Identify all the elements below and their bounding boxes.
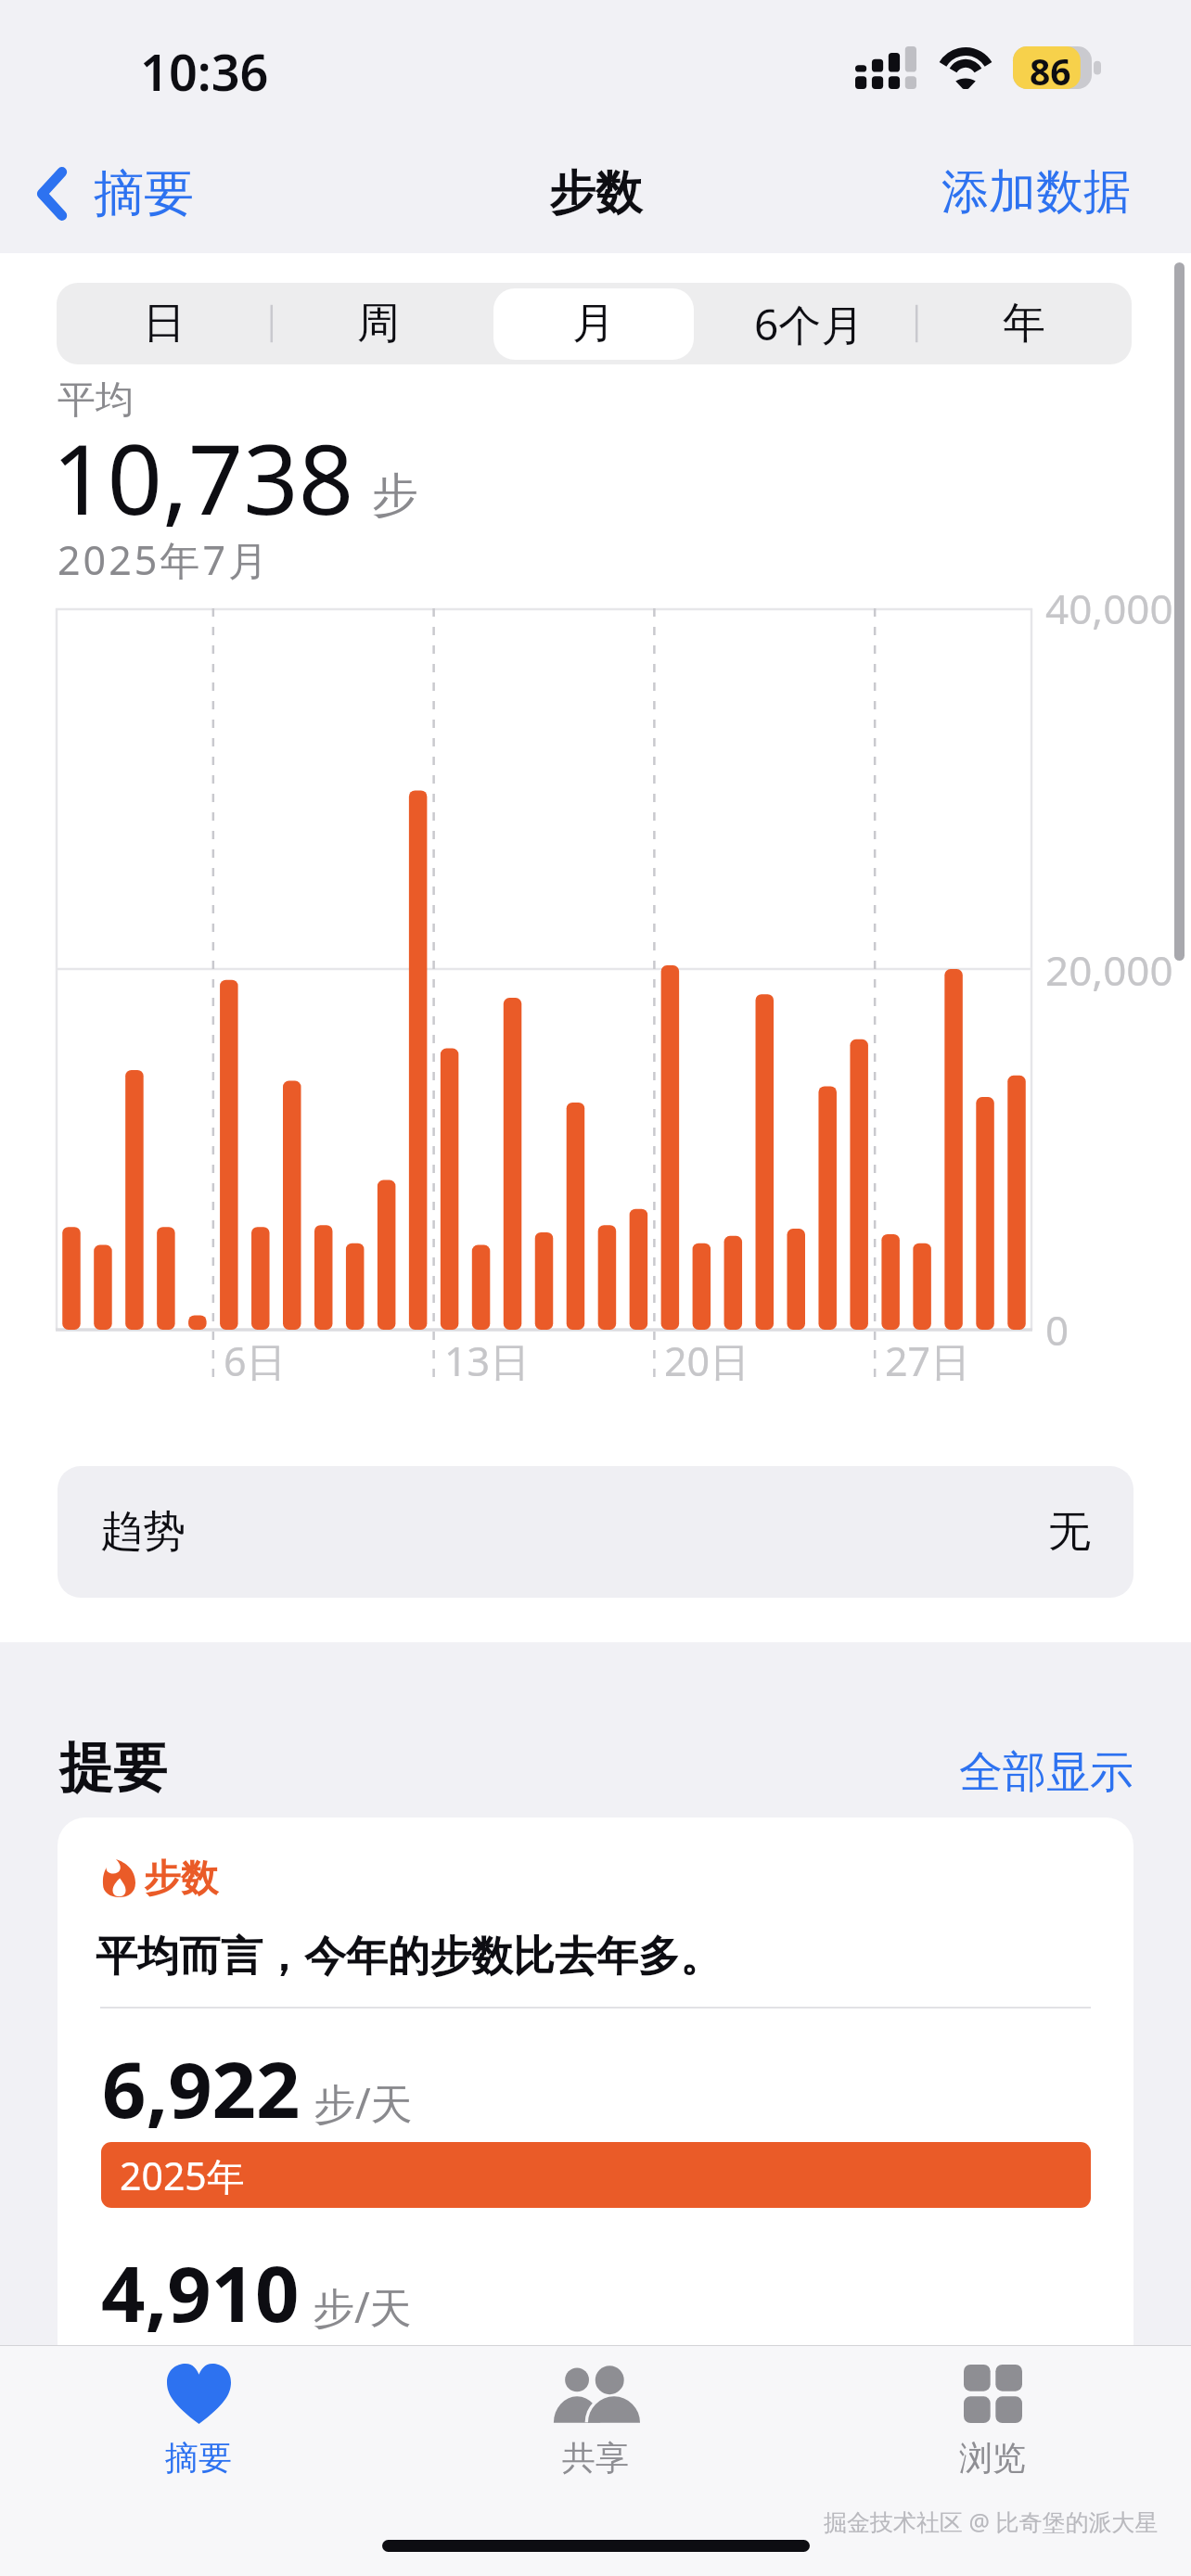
button[interactable]: 全部显示 — [941, 1745, 1191, 1800]
staticText: 年 — [1003, 297, 1045, 351]
other: 摘要 — [167, 2364, 231, 2424]
staticText: 无 — [1048, 1505, 1091, 1559]
staticText: 6个月 — [754, 295, 864, 353]
other: 共享 — [552, 2365, 640, 2423]
button[interactable]: 摘要 — [0, 2346, 397, 2494]
button[interactable]: 日 — [57, 283, 271, 364]
staticText: 27日 — [885, 1333, 971, 1388]
button[interactable]: 共享 — [397, 2346, 794, 2494]
staticText: 添加数据 — [941, 162, 1131, 222]
staticText: 6日 — [224, 1333, 287, 1388]
staticText: 掘金技术社区 @ 比奇堡的派大星 — [824, 2506, 1159, 2537]
staticText: 摘要 — [165, 2437, 232, 2479]
staticText: 步数 — [549, 164, 642, 223]
staticText: 10:36 — [140, 37, 269, 106]
staticText: 步/天 — [314, 2074, 413, 2131]
staticText: 40,000 — [1045, 580, 1173, 636]
button[interactable]: 月 — [486, 283, 701, 364]
other: 浏览 — [964, 2365, 1022, 2423]
staticText: 日 — [143, 297, 186, 351]
button[interactable]: 周 — [271, 283, 486, 364]
button[interactable]: 步数 — [58, 1817, 1133, 2346]
staticText: 86 — [1030, 46, 1071, 89]
button[interactable]: 摘要 — [22, 155, 211, 233]
staticText: 摘要 — [94, 162, 194, 225]
staticText: 2025年7月 — [58, 532, 271, 587]
staticText: 6,922 — [102, 2035, 301, 2140]
staticText: 浏览 — [959, 2437, 1026, 2479]
staticText: 4,910 — [101, 2239, 300, 2344]
staticText: 平均 — [58, 376, 134, 425]
staticText: 20,000 — [1045, 942, 1173, 998]
button[interactable]: 趋势 — [58, 1466, 1133, 1598]
staticText: 步/天 — [313, 2278, 412, 2335]
button[interactable]: 6个月 — [701, 283, 916, 364]
staticText: 步数 — [144, 1855, 218, 1901]
staticText: 平均而言，今年的步数比去年多。 — [96, 1931, 722, 1983]
staticText: 提要 — [59, 1734, 167, 1802]
staticText: 周 — [357, 297, 400, 351]
staticText: 2025年 — [120, 2149, 245, 2201]
staticText: 0 — [1045, 1302, 1069, 1358]
button[interactable]: 浏览 — [794, 2346, 1191, 2494]
button[interactable]: 添加数据 — [923, 162, 1191, 222]
staticText: 共享 — [562, 2437, 629, 2479]
button[interactable]: 年 — [916, 283, 1132, 364]
staticText: 趋势 — [100, 1505, 186, 1559]
staticText: 10,738 — [52, 412, 354, 543]
staticText: 月 — [572, 297, 615, 351]
staticText: 20日 — [664, 1333, 750, 1388]
staticText: 全部显示 — [959, 1745, 1133, 1800]
staticText: 13日 — [444, 1333, 531, 1388]
staticText: 步 — [372, 466, 418, 525]
